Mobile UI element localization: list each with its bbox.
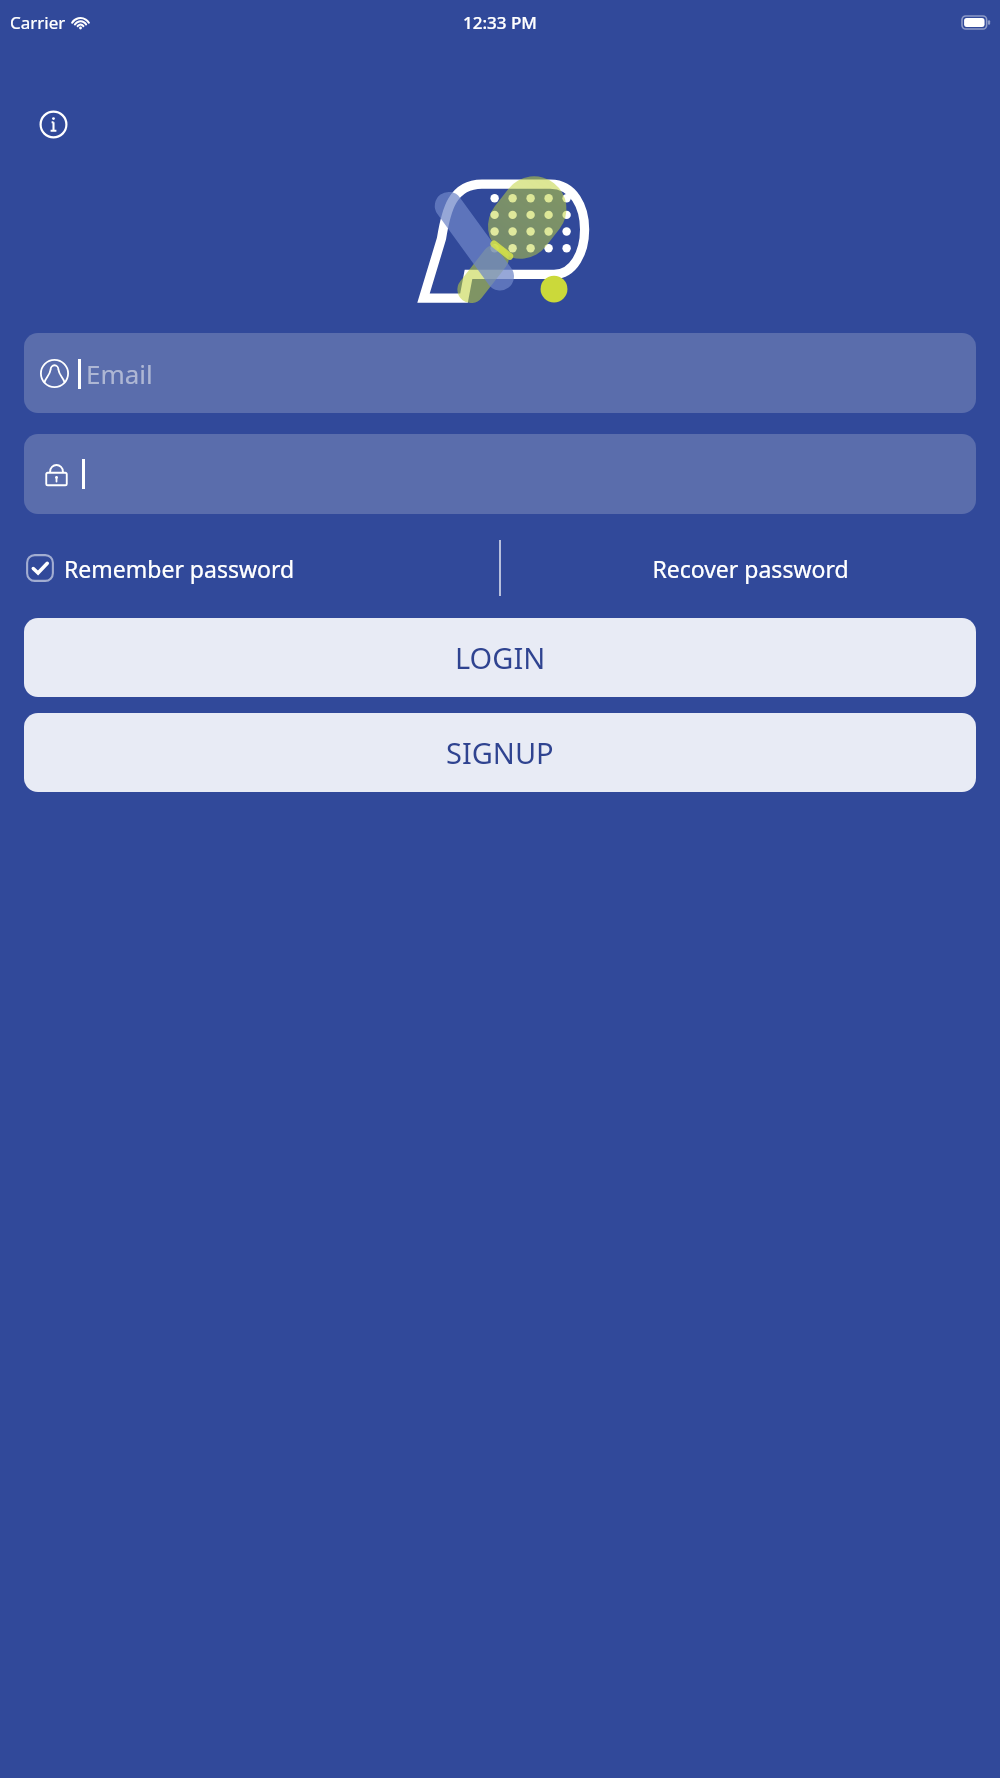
staticText: LOGIN xyxy=(455,638,546,677)
staticText: SIGNUP xyxy=(446,733,554,772)
staticText: Email xyxy=(86,356,153,391)
button[interactable]: Remember password xyxy=(0,540,499,596)
staticText: Recover password xyxy=(652,553,849,584)
staticText: 12:33 PM xyxy=(463,11,537,34)
staticText: Remember password xyxy=(64,553,295,584)
button[interactable] xyxy=(24,434,976,514)
button[interactable]: SIGNUP xyxy=(24,713,976,792)
button[interactable]: Information xyxy=(29,100,77,148)
button[interactable]: LOGIN xyxy=(24,618,976,697)
button[interactable]: Email xyxy=(24,333,976,413)
button[interactable]: Recover password xyxy=(501,540,1000,596)
staticText: Carrier xyxy=(10,11,66,34)
